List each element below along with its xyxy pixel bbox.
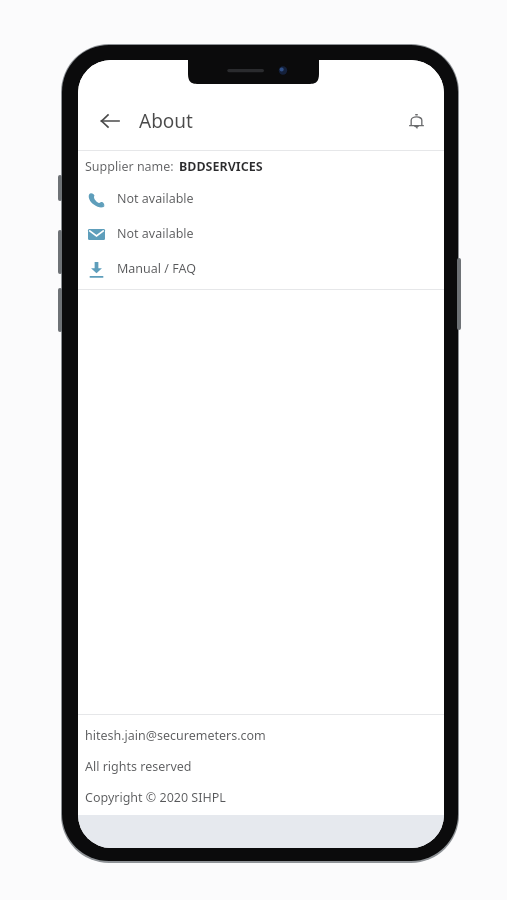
staticText: Not available (117, 190, 194, 207)
staticText: All rights reserved (85, 758, 192, 775)
staticText: Not available (117, 225, 194, 242)
staticText: Copyright © 2020 SIHPL (85, 789, 226, 806)
button[interactable]: Supplier name: (78, 151, 444, 181)
button[interactable]: Not available (78, 216, 444, 251)
staticText: About (139, 108, 193, 134)
button[interactable]: Back (92, 103, 128, 139)
button[interactable]: hitesh.jain@securemeters.com (85, 727, 266, 744)
staticText: Manual / FAQ (117, 260, 196, 277)
button[interactable]: Manual / FAQ (78, 251, 444, 286)
button[interactable]: Notifications (396, 101, 436, 141)
staticText: Supplier name: (85, 158, 174, 175)
button[interactable]: Not available (78, 181, 444, 216)
staticText: BDDSERVICES (179, 158, 263, 175)
